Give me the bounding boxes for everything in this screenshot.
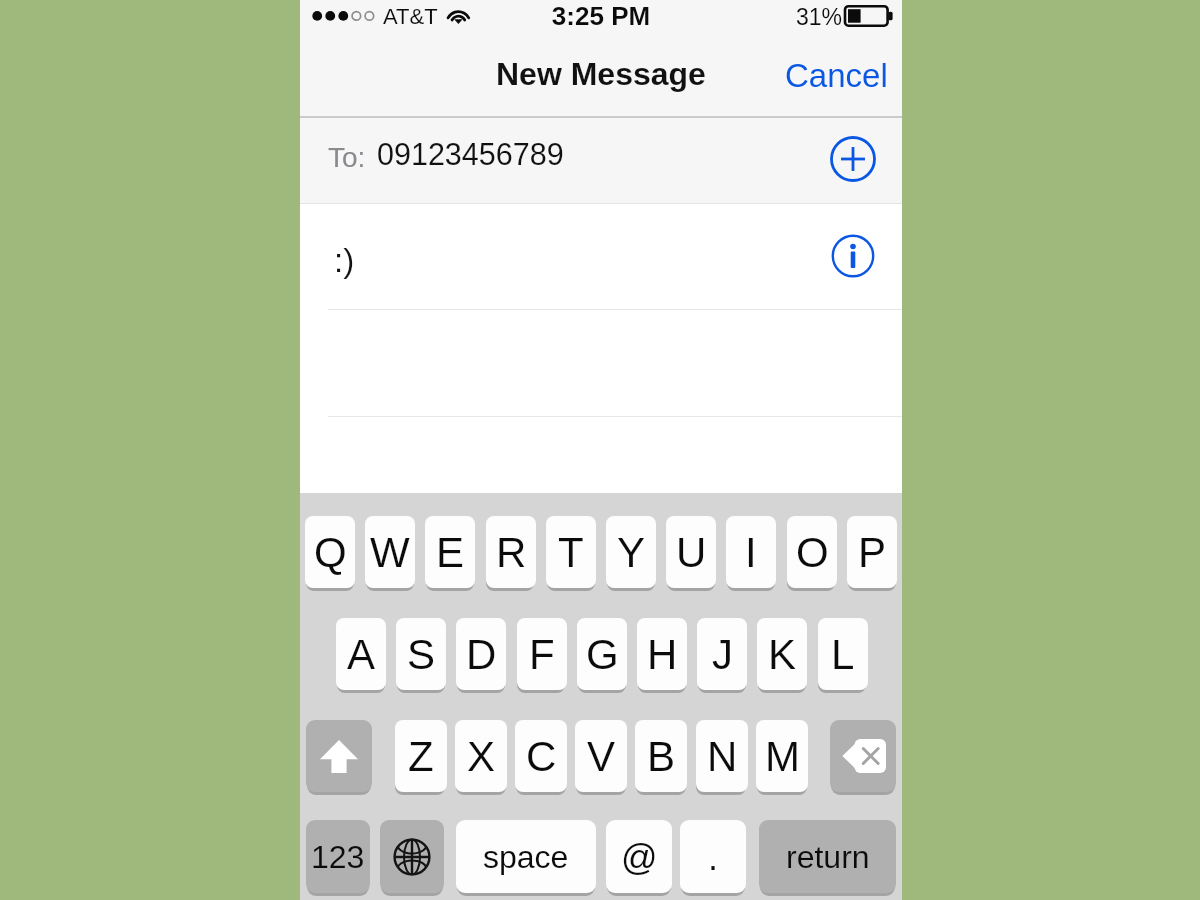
button[interactable]: To: bbox=[300, 118, 902, 204]
button[interactable]: Cancel bbox=[771, 47, 902, 108]
button[interactable]: F bbox=[517, 618, 567, 690]
staticText: space bbox=[483, 839, 569, 875]
button[interactable]: C bbox=[515, 720, 567, 792]
button[interactable]: W bbox=[365, 516, 415, 588]
staticText: G bbox=[586, 631, 619, 678]
button[interactable]: @ bbox=[606, 820, 672, 893]
button[interactable]: return bbox=[759, 820, 896, 893]
staticText: 3:25 PM bbox=[300, 1, 902, 30]
button[interactable]: D bbox=[456, 618, 506, 690]
staticText: I bbox=[745, 529, 757, 576]
staticText: D bbox=[466, 631, 497, 678]
button[interactable]: T bbox=[546, 516, 596, 588]
staticText: Y bbox=[617, 529, 646, 576]
staticText: S bbox=[407, 631, 436, 678]
staticText: R bbox=[496, 529, 527, 576]
staticText: U bbox=[676, 529, 707, 576]
button[interactable]: Y bbox=[606, 516, 656, 588]
button[interactable]: R bbox=[486, 516, 536, 588]
button[interactable]: U bbox=[666, 516, 716, 588]
button[interactable]: K bbox=[757, 618, 807, 690]
staticText: :) bbox=[334, 242, 355, 279]
button[interactable]: I bbox=[726, 516, 776, 588]
staticText: T bbox=[558, 529, 584, 576]
staticText: B bbox=[647, 733, 676, 780]
button[interactable]: Z bbox=[395, 720, 447, 792]
staticText: New Message bbox=[496, 56, 706, 92]
staticText: . bbox=[708, 837, 719, 877]
staticText: N bbox=[707, 733, 738, 780]
staticText: J bbox=[712, 631, 733, 678]
staticText: E bbox=[436, 529, 465, 576]
staticText: @ bbox=[621, 837, 658, 877]
staticText: O bbox=[796, 529, 829, 576]
button[interactable]: P bbox=[847, 516, 897, 588]
button[interactable]: E bbox=[425, 516, 475, 588]
staticText: A bbox=[347, 631, 376, 678]
staticText: P bbox=[858, 529, 887, 576]
staticText: 31% bbox=[796, 4, 843, 30]
staticText: 09123456789 bbox=[377, 137, 564, 171]
button[interactable]: J bbox=[697, 618, 747, 690]
staticText: X bbox=[467, 733, 496, 780]
button[interactable]: space bbox=[456, 820, 596, 893]
button[interactable]: Add contact bbox=[830, 136, 876, 182]
staticText: F bbox=[529, 631, 555, 678]
button[interactable]: Shift bbox=[306, 720, 372, 792]
staticText: H bbox=[647, 631, 678, 678]
staticText: Q bbox=[314, 529, 347, 576]
staticText: Z bbox=[408, 733, 434, 780]
staticText: AT&T bbox=[383, 4, 438, 29]
staticText: return bbox=[786, 839, 870, 875]
staticText: To: bbox=[328, 142, 366, 173]
staticText: Cancel bbox=[785, 57, 888, 94]
button[interactable]: 123 bbox=[306, 820, 370, 893]
button[interactable]: Info bbox=[831, 234, 875, 278]
button[interactable]: Change keyboard bbox=[380, 820, 444, 893]
staticText: 123 bbox=[311, 839, 365, 875]
button[interactable]: Q bbox=[305, 516, 355, 588]
button[interactable]: H bbox=[637, 618, 687, 690]
button[interactable]: A bbox=[336, 618, 386, 690]
staticText: C bbox=[526, 733, 557, 780]
button[interactable]: M bbox=[756, 720, 808, 792]
staticText: L bbox=[831, 631, 855, 678]
button[interactable]: N bbox=[696, 720, 748, 792]
staticText: W bbox=[370, 529, 410, 576]
button[interactable]: G bbox=[577, 618, 627, 690]
button[interactable]: S bbox=[396, 618, 446, 690]
button[interactable]: V bbox=[575, 720, 627, 792]
staticText: V bbox=[587, 733, 616, 780]
button[interactable]: X bbox=[455, 720, 507, 792]
button[interactable]: Backspace bbox=[830, 720, 896, 792]
button[interactable]: B bbox=[635, 720, 687, 792]
button[interactable]: O bbox=[787, 516, 837, 588]
button[interactable]: L bbox=[818, 618, 868, 690]
staticText: M bbox=[765, 733, 800, 780]
staticText: K bbox=[768, 631, 797, 678]
button[interactable]: . bbox=[680, 820, 746, 893]
